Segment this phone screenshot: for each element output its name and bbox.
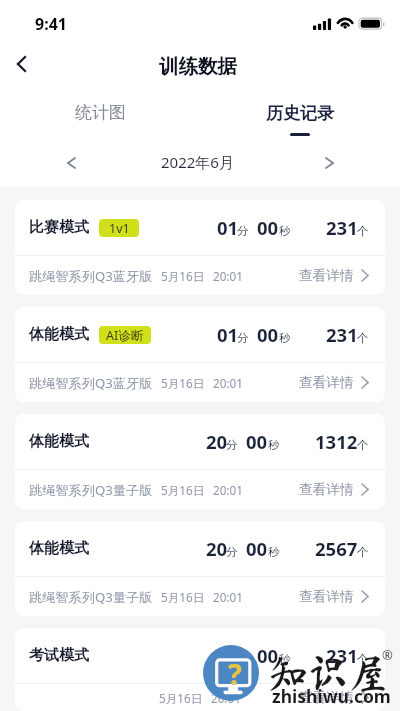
button[interactable]: 查看详情: [299, 588, 368, 605]
staticText: 20: [206, 536, 228, 561]
staticText: 查看详情: [299, 374, 354, 391]
staticText: 查看详情: [299, 588, 354, 605]
staticText: 20:01: [213, 268, 243, 284]
staticText: 5月16日: [161, 482, 205, 498]
button[interactable]: 查看详情: [299, 374, 368, 391]
staticText: 秒: [279, 224, 291, 238]
button[interactable]: 查看详情: [299, 689, 368, 706]
staticText: 跳绳智系列Q3蓝牙版: [29, 374, 153, 392]
staticText: 2022年6月: [161, 152, 234, 172]
staticText: 20:01: [213, 375, 243, 391]
staticText: 查看详情: [299, 267, 354, 284]
staticText: 个: [357, 438, 369, 452]
staticText: 20: [217, 643, 239, 668]
staticText: 跳绳智系列Q3蓝牙版: [29, 267, 153, 285]
staticText: 20:01: [211, 690, 241, 706]
staticText: 00: [257, 322, 279, 347]
staticText: 秒: [279, 652, 291, 666]
staticText: 个: [357, 224, 369, 238]
button[interactable]: 比赛模式: [15, 200, 385, 295]
staticText: 5月16日: [159, 690, 203, 706]
staticText: 分: [237, 224, 249, 238]
staticText: 2567: [315, 536, 358, 561]
staticText: 体能模式: [29, 539, 89, 558]
staticText: 秒: [268, 545, 280, 559]
staticText: 分: [226, 438, 238, 452]
staticText: 考试模式: [29, 646, 89, 665]
staticText: 跳绳智系列Q3量子版: [29, 588, 153, 606]
staticText: 20:01: [213, 589, 243, 605]
button[interactable]: 统计图: [0, 88, 200, 138]
staticText: 231: [326, 215, 358, 240]
staticText: 20:01: [213, 482, 243, 498]
staticText: 9:41: [35, 13, 67, 35]
staticText: 分: [226, 545, 238, 559]
staticText: 个: [357, 545, 369, 559]
button[interactable]: Back: [0, 42, 43, 86]
staticText: 00: [246, 536, 268, 561]
staticText: 1v1: [109, 220, 130, 237]
button[interactable]: 体能模式: [15, 414, 385, 509]
staticText: 分: [237, 652, 249, 666]
staticText: 00: [246, 429, 268, 454]
button[interactable]: 历史记录: [200, 88, 400, 138]
button[interactable]: Next month: [313, 147, 345, 179]
staticText: 5月16日: [161, 589, 205, 605]
staticText: 01: [217, 322, 239, 347]
staticText: 231: [326, 322, 358, 347]
staticText: 5月16日: [161, 375, 205, 391]
staticText: 00: [257, 215, 279, 240]
staticText: 1312: [315, 429, 358, 454]
staticText: 00: [257, 643, 279, 668]
button[interactable]: 考试模式: [15, 628, 385, 711]
button[interactable]: 体能模式: [15, 307, 385, 402]
staticText: AI诊断: [106, 327, 144, 344]
staticText: 查看详情: [299, 689, 354, 706]
staticText: 知识屋: [268, 653, 388, 693]
staticText: 分: [237, 331, 249, 345]
staticText: 秒: [268, 438, 280, 452]
button[interactable]: Previous month: [55, 147, 87, 179]
staticText: 5月16日: [161, 268, 205, 284]
staticText: 体能模式: [29, 432, 89, 451]
staticText: 体能模式: [29, 325, 89, 344]
staticText: 比赛模式: [29, 218, 89, 237]
staticText: 跳绳智系列Q3量子版: [29, 481, 153, 499]
staticText: ®: [382, 646, 393, 664]
staticText: 统计图: [75, 102, 126, 123]
staticText: ?: [228, 654, 242, 693]
staticText: 01: [217, 215, 239, 240]
staticText: 231: [326, 643, 358, 668]
staticText: 历史记录: [266, 103, 334, 124]
staticText: 个: [357, 652, 369, 666]
staticText: 查看详情: [299, 481, 354, 498]
staticText: zhishiwu.com: [272, 684, 391, 708]
button[interactable]: 体能模式: [15, 521, 385, 616]
button[interactable]: 查看详情: [299, 481, 368, 498]
staticText: 训练数据: [159, 54, 237, 79]
button[interactable]: 查看详情: [299, 267, 368, 284]
staticText: 20: [206, 429, 228, 454]
staticText: 秒: [279, 331, 291, 345]
staticText: 个: [357, 331, 369, 345]
